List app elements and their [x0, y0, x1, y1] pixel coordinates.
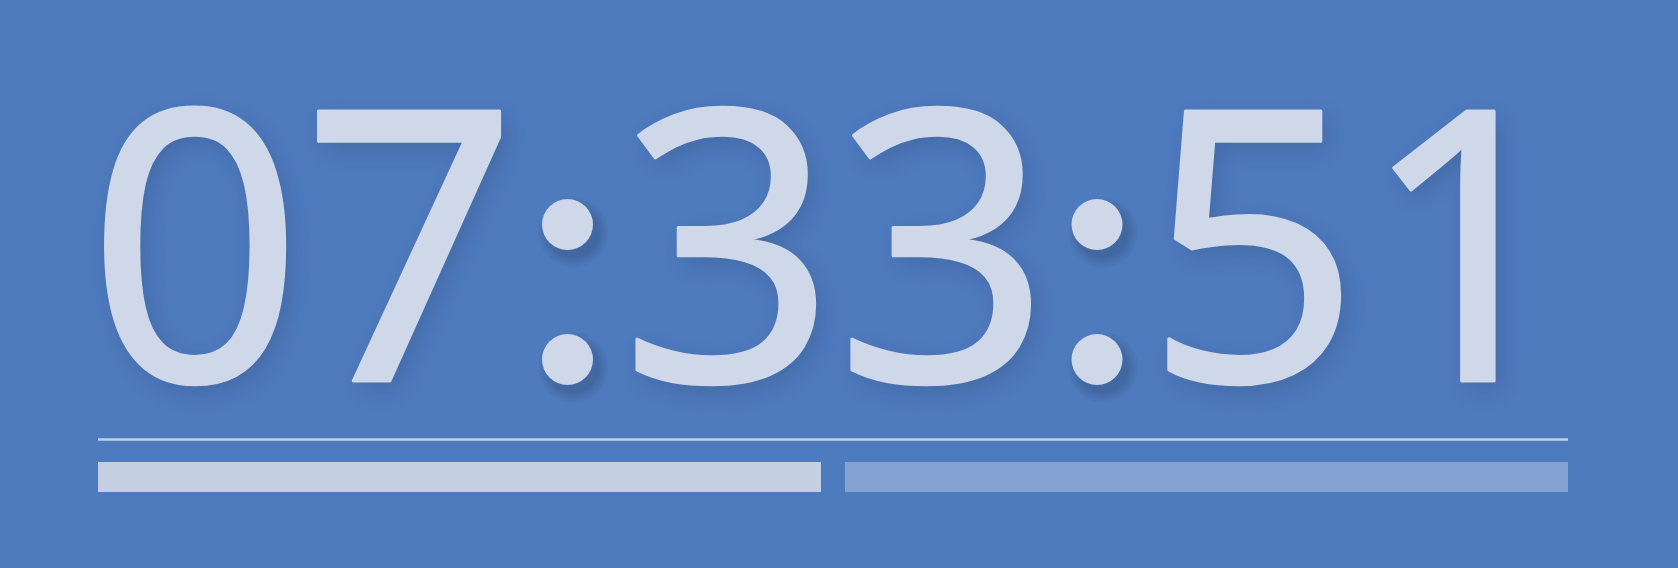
staticText: 07 [87, 0, 517, 492]
button[interactable]: 07 [0, 0, 1678, 568]
staticText: 51 [1145, 0, 1575, 492]
staticText: 07 [87, 0, 517, 492]
staticText: 33 [620, 0, 1050, 492]
staticText: 51 [1145, 0, 1575, 492]
staticText: 51 [1145, 0, 1575, 492]
staticText: 07 [87, 0, 517, 492]
staticText: 33 [620, 0, 1050, 492]
staticText: 33 [620, 0, 1050, 492]
